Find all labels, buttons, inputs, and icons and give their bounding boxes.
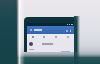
button[interactable]: Calls (62, 34, 74, 39)
button[interactable] (27, 41, 74, 46)
button[interactable]: Search (65, 29, 68, 32)
button[interactable]: Chats (38, 34, 50, 39)
button[interactable]: Menu (29, 28, 33, 32)
button[interactable]: More options (69, 29, 72, 32)
button[interactable]: Camera (27, 34, 38, 39)
button[interactable]: Status (50, 34, 62, 39)
button[interactable] (27, 48, 74, 52)
